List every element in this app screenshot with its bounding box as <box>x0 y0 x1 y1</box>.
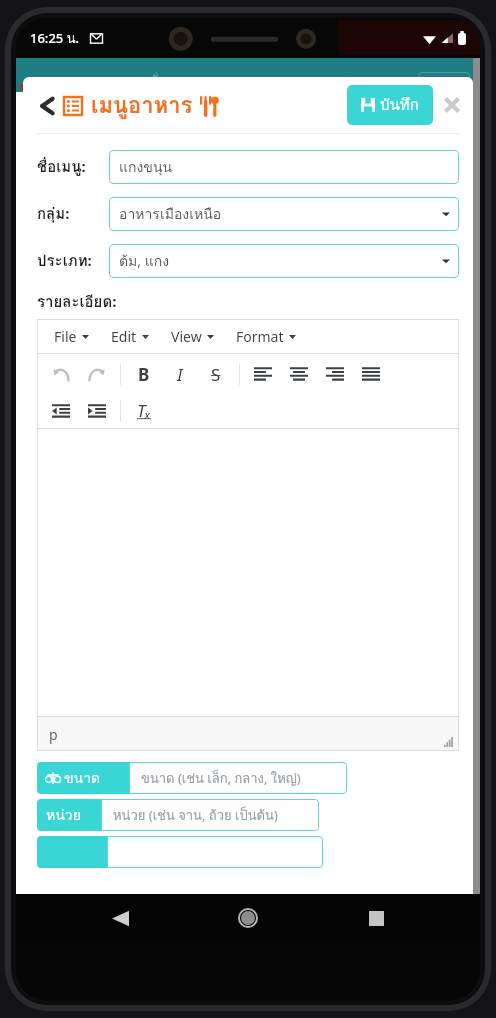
button[interactable] <box>37 836 107 868</box>
button[interactable]: Align center <box>281 356 317 392</box>
staticText: หน่วย (เช่น จาน, ถ้วย เป็นต้น) <box>113 805 278 826</box>
button[interactable]: ขนาด <box>37 762 129 794</box>
staticText: บันทึก <box>380 93 419 117</box>
button[interactable]: บันทึก <box>347 85 433 125</box>
staticText: Edit <box>111 327 137 346</box>
staticText: View <box>171 327 202 346</box>
button[interactable]: View <box>162 322 223 351</box>
button[interactable]: Italic <box>162 356 198 392</box>
button[interactable]: แกงขนุน <box>109 150 459 184</box>
staticText: อาหารเมืองเหนือ <box>119 203 222 225</box>
button[interactable]: Edit <box>102 322 158 351</box>
button[interactable]: ต้ม, แกง <box>109 244 459 278</box>
staticText: Tₓ <box>137 399 151 422</box>
staticText: เมนูอาหาร <box>91 88 193 123</box>
button[interactable]: Justify <box>353 356 389 392</box>
staticText: p <box>49 725 58 744</box>
button[interactable]: Recents <box>352 894 400 942</box>
staticText: I <box>177 363 183 386</box>
button[interactable]: อาหารเมืองเหนือ <box>109 197 459 231</box>
staticText: ขนาด <box>64 767 101 789</box>
staticText: รายละเอียด: <box>37 290 117 314</box>
staticText: ชื่อเมนู: <box>37 155 86 179</box>
button[interactable]: Back <box>96 894 144 942</box>
button[interactable]: File <box>45 322 98 351</box>
staticText: B <box>138 363 150 386</box>
staticText: สั่งอาหาร <box>150 70 203 91</box>
button[interactable]: Back <box>35 94 59 118</box>
staticText: แกงขนุน <box>119 156 173 178</box>
button[interactable]: Home <box>224 894 272 942</box>
staticText: กลุ่ม: <box>37 202 70 226</box>
button[interactable]: Align right <box>317 356 353 392</box>
button[interactable]: Format <box>227 322 305 351</box>
staticText: 16:25 น. <box>30 28 80 49</box>
button[interactable]: Outdent <box>43 393 79 428</box>
button[interactable]: Align left <box>245 356 281 392</box>
button[interactable]: Redo <box>79 356 115 392</box>
button[interactable]: Indent <box>79 393 115 428</box>
button[interactable]: Bold <box>126 356 162 392</box>
staticText: ขนาด (เช่น เล็ก, กลาง, ใหญ่) <box>141 768 301 789</box>
button[interactable]: Close <box>439 92 465 118</box>
staticText: Format <box>236 327 284 346</box>
staticText: ต้ม, แกง <box>119 250 170 272</box>
staticText: S <box>211 363 221 386</box>
staticText: ประเภท: <box>37 249 92 273</box>
button[interactable]: หน่วย (เช่น จาน, ถ้วย เป็นต้น) <box>101 799 319 831</box>
button[interactable]: Clear formatting <box>126 393 162 428</box>
button[interactable]: Strikethrough <box>198 356 234 392</box>
staticText: หน่วย <box>46 804 81 826</box>
staticText: File <box>54 327 77 346</box>
button[interactable]: หน่วย <box>37 799 101 831</box>
button[interactable]: Undo <box>43 356 79 392</box>
button[interactable] <box>107 836 323 868</box>
button[interactable]: ขนาด (เช่น เล็ก, กลาง, ใหญ่) <box>129 762 347 794</box>
